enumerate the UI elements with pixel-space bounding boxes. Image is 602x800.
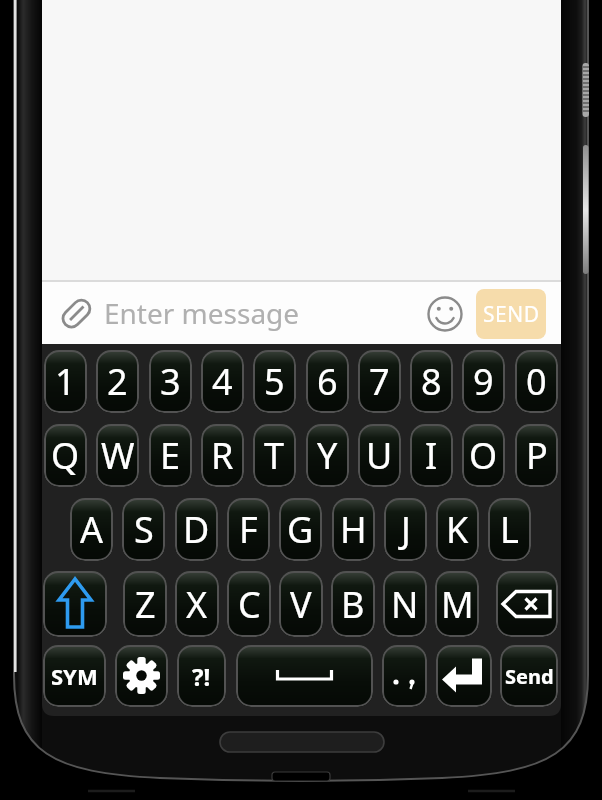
button[interactable]: K [436, 498, 479, 561]
staticText: 8 [421, 357, 442, 406]
staticText: T [264, 431, 285, 480]
button[interactable]: 8 [410, 350, 453, 413]
staticText: O [469, 431, 498, 480]
staticText: P [526, 431, 548, 480]
staticText: J [401, 505, 411, 554]
button[interactable]: C [227, 571, 271, 637]
button[interactable]: 2 [96, 350, 139, 413]
button[interactable]: 9 [462, 350, 505, 413]
staticText: M [441, 580, 474, 629]
button[interactable]: ?! [177, 645, 226, 707]
button[interactable]: I [410, 424, 453, 487]
button[interactable]: L [488, 498, 531, 561]
staticText: Enter message [104, 294, 300, 332]
staticText: E [160, 431, 181, 480]
button[interactable] [496, 571, 558, 637]
button[interactable]: A [70, 498, 113, 561]
staticText: SYM [51, 661, 98, 691]
button[interactable]: R [201, 424, 244, 487]
staticText: 2 [107, 357, 128, 406]
staticText: A [80, 505, 104, 554]
staticText: Send [505, 663, 554, 690]
staticText: D [183, 505, 210, 554]
button[interactable]: Q [44, 424, 87, 487]
button[interactable] [43, 571, 107, 637]
staticText: B [341, 580, 365, 629]
button[interactable] [115, 645, 168, 707]
staticText: 1 [55, 357, 76, 406]
staticText: X [186, 580, 208, 629]
staticText: V [290, 580, 312, 629]
button[interactable] [436, 645, 492, 707]
button[interactable]: E [149, 424, 192, 487]
staticText: F [239, 505, 258, 554]
button[interactable]: S [122, 498, 165, 561]
button[interactable]: 1 [44, 350, 87, 413]
button[interactable]: H [332, 498, 375, 561]
button[interactable]: F [227, 498, 270, 561]
button[interactable]: J [384, 498, 427, 561]
staticText: 3 [160, 357, 181, 406]
button[interactable]: U [358, 424, 401, 487]
staticText: 0 [526, 357, 547, 406]
button[interactable]: V [279, 571, 323, 637]
button[interactable] [382, 645, 427, 707]
staticText: Q [51, 431, 80, 480]
button[interactable]: 5 [253, 350, 296, 413]
staticText: Y [317, 431, 338, 480]
button[interactable]: N [383, 571, 427, 637]
button[interactable]: T [253, 424, 296, 487]
button[interactable]: SYM [43, 645, 106, 707]
button[interactable]: Y [306, 424, 349, 487]
staticText: G [287, 505, 314, 554]
button[interactable]: SEND [476, 289, 546, 339]
button[interactable]: D [175, 498, 218, 561]
button[interactable]: B [331, 571, 375, 637]
button[interactable]: 7 [358, 350, 401, 413]
button[interactable]: Send [500, 645, 558, 707]
button[interactable]: O [462, 424, 505, 487]
button[interactable]: X [175, 571, 219, 637]
staticText: L [500, 505, 519, 554]
staticText: ?! [192, 660, 211, 693]
staticText: U [366, 431, 393, 480]
staticText: SEND [483, 300, 540, 329]
button[interactable]: 6 [306, 350, 349, 413]
button[interactable]: 4 [201, 350, 244, 413]
staticText: 4 [212, 357, 233, 406]
staticText: 5 [264, 357, 285, 406]
button[interactable]: 3 [149, 350, 192, 413]
button[interactable]: Z [123, 571, 167, 637]
staticText: I [425, 431, 438, 480]
staticText: S [134, 505, 154, 554]
staticText: N [391, 580, 419, 629]
staticText: 6 [317, 357, 338, 406]
button[interactable]: P [515, 424, 558, 487]
staticText: K [446, 505, 469, 554]
button[interactable] [236, 645, 373, 707]
staticText: W [101, 431, 135, 480]
staticText: H [340, 505, 367, 554]
staticText: 7 [369, 357, 390, 406]
button[interactable]: M [435, 571, 479, 637]
staticText: R [211, 431, 234, 480]
button[interactable]: G [279, 498, 322, 561]
button[interactable]: 0 [515, 350, 558, 413]
staticText: Z [135, 580, 156, 629]
staticText: C [238, 580, 261, 629]
button[interactable]: Enter message [56, 282, 396, 344]
button[interactable]: W [96, 424, 139, 487]
staticText: 9 [473, 357, 494, 406]
